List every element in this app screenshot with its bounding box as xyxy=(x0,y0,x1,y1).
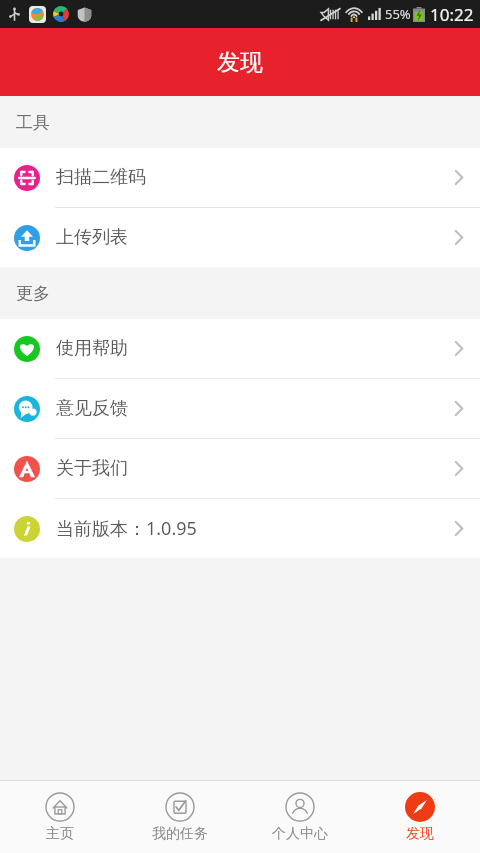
staticText: 55% xyxy=(385,5,411,23)
button[interactable]: 上传列表 xyxy=(0,208,480,267)
button[interactable]: 使用帮助 xyxy=(0,319,480,378)
staticText: 使用帮助 xyxy=(56,337,128,360)
staticText: 上传列表 xyxy=(56,226,128,249)
other: 个人中心 xyxy=(285,792,315,822)
staticText: 关于我们 xyxy=(56,457,128,480)
button[interactable]: 关于我们 xyxy=(0,439,480,498)
other: 发现 xyxy=(405,792,435,822)
staticText: 工具 xyxy=(16,112,50,133)
button[interactable]: 个人中心 xyxy=(240,781,360,853)
staticText: 更多 xyxy=(16,283,50,304)
other: 我的任务 xyxy=(165,792,195,822)
staticText: 主页 xyxy=(46,825,74,843)
button[interactable]: 意见反馈 xyxy=(0,379,480,438)
staticText: 个人中心 xyxy=(272,825,328,843)
staticText: 扫描二维码 xyxy=(56,166,146,189)
staticText: 意见反馈 xyxy=(56,397,128,420)
button[interactable]: 扫描二维码 xyxy=(0,148,480,207)
button[interactable]: 发现 xyxy=(360,781,480,853)
staticText: 10:22 xyxy=(430,3,474,26)
button[interactable]: 发现 xyxy=(0,28,480,96)
button[interactable]: 主页 xyxy=(0,781,120,853)
staticText: 发现 xyxy=(217,48,263,77)
button[interactable]: 我的任务 xyxy=(120,781,240,853)
staticText: 当前版本：1.0.95 xyxy=(56,516,197,541)
staticText: 我的任务 xyxy=(152,825,208,843)
staticText: 发现 xyxy=(406,825,434,843)
button[interactable]: 当前版本：1.0.95 xyxy=(0,499,480,558)
other: 主页 xyxy=(45,792,75,822)
